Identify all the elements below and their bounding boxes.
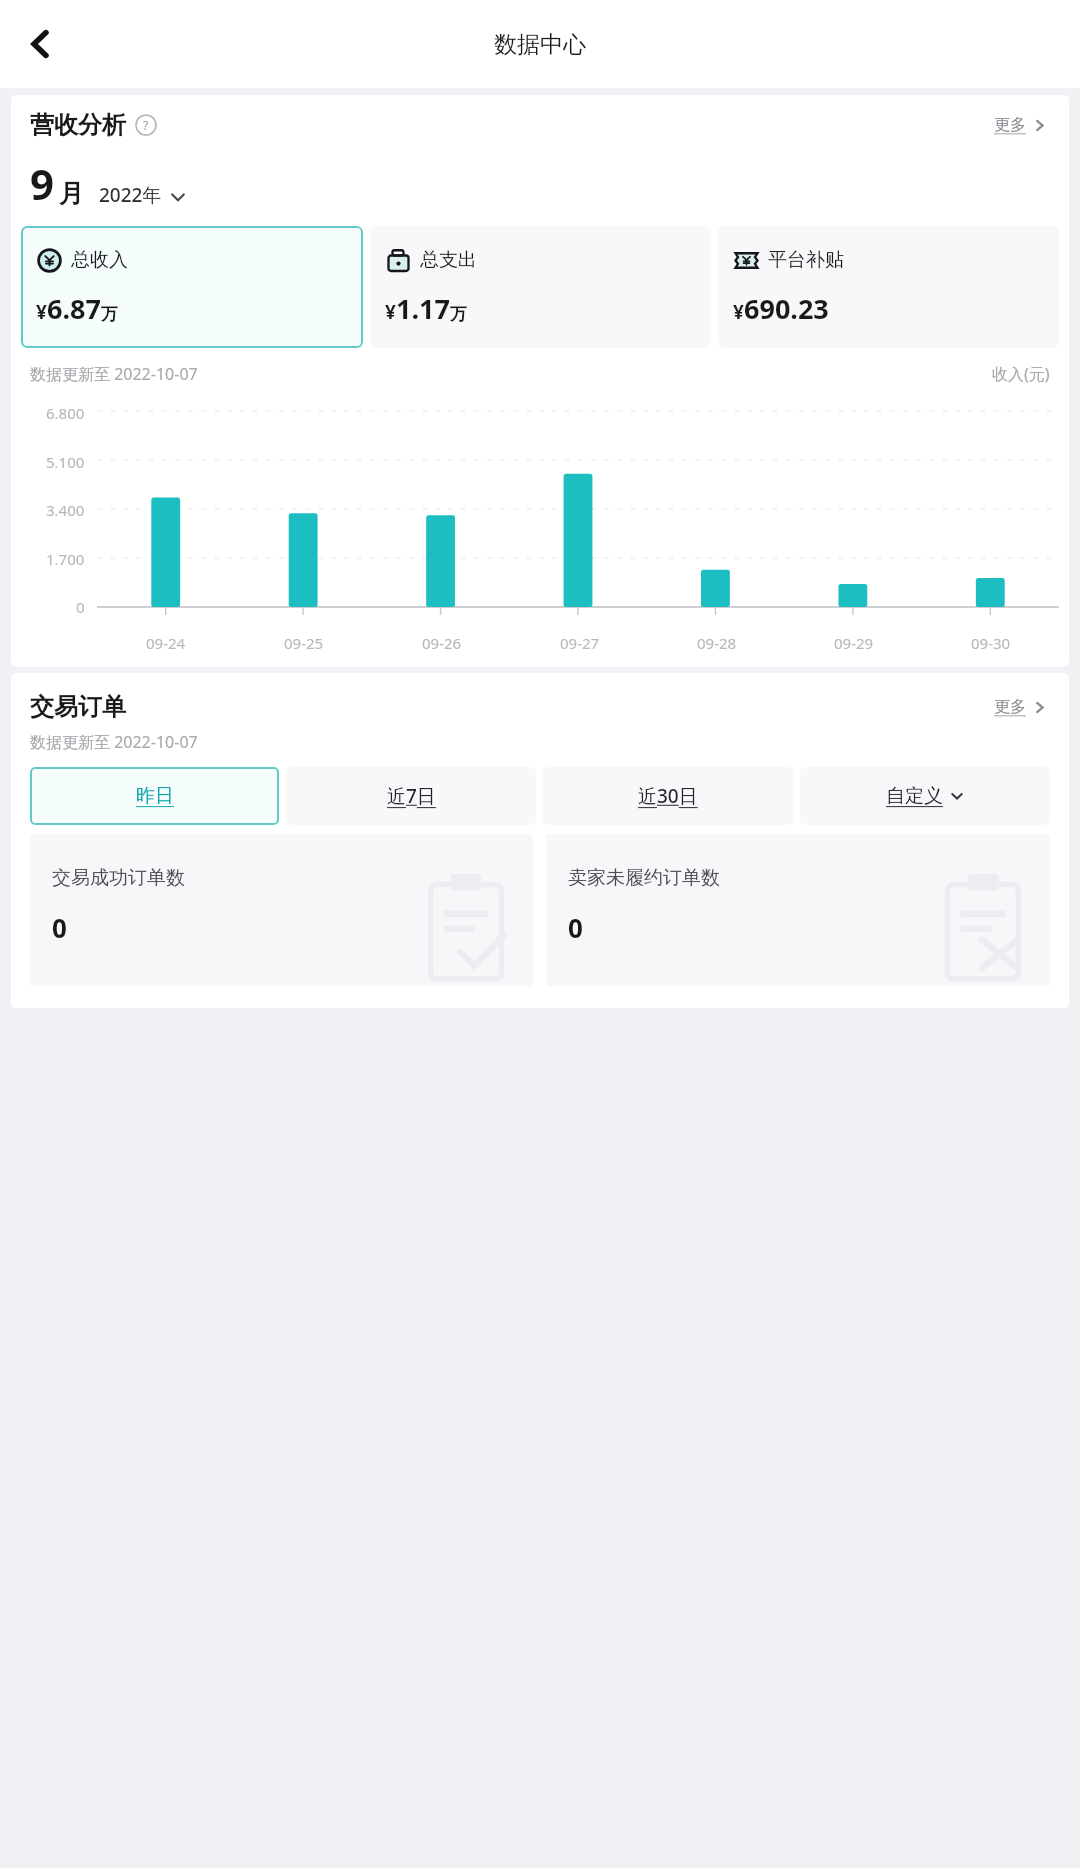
staticText: 总收入 bbox=[71, 248, 128, 272]
staticText: 09-29 bbox=[834, 633, 874, 653]
staticText: 卖家未履约订单数 bbox=[568, 866, 720, 890]
button[interactable]: 更多 bbox=[990, 691, 1050, 723]
button[interactable]: 总支出 bbox=[370, 226, 711, 348]
button[interactable]: 交易成功订单数 bbox=[30, 834, 533, 986]
button[interactable]: 卖家未履约订单数 bbox=[546, 834, 1050, 986]
button[interactable]: 近7日 bbox=[286, 767, 536, 825]
staticText: 万 bbox=[101, 304, 118, 325]
staticText: 1,700 bbox=[46, 549, 85, 565]
staticText: 昨日 bbox=[136, 784, 174, 808]
staticText: 6.87 bbox=[47, 290, 101, 327]
staticText: 近7日 bbox=[387, 783, 436, 809]
button[interactable]: Back bbox=[6, 10, 74, 78]
staticText: 5,100 bbox=[46, 452, 85, 468]
staticText: ? bbox=[143, 117, 149, 133]
button[interactable]: 昨日 bbox=[30, 767, 279, 825]
button[interactable]: 更多 bbox=[990, 109, 1050, 141]
staticText: 平台补贴 bbox=[768, 248, 844, 272]
staticText: 交易订单 bbox=[30, 692, 126, 722]
staticText: 近30日 bbox=[638, 783, 698, 809]
staticText: 9 bbox=[30, 155, 55, 212]
staticText: 总支出 bbox=[420, 248, 477, 272]
staticText: 更多 bbox=[994, 115, 1026, 135]
staticText: 2022年 bbox=[99, 182, 162, 208]
button[interactable]: 总收入 bbox=[21, 226, 363, 348]
staticText: ¥ bbox=[36, 299, 47, 325]
staticText: 09-24 bbox=[146, 633, 186, 653]
staticText: 09-28 bbox=[697, 633, 737, 653]
button[interactable]: 说明 bbox=[135, 114, 157, 136]
staticText: 更多 bbox=[994, 697, 1026, 717]
staticText: 营收分析 bbox=[30, 110, 126, 140]
staticText: 09-26 bbox=[422, 633, 462, 653]
staticText: 09-30 bbox=[971, 633, 1011, 653]
button[interactable]: 自定义 bbox=[800, 767, 1050, 825]
button[interactable]: 平台补贴 bbox=[718, 226, 1059, 348]
staticText: 0 bbox=[52, 910, 67, 945]
staticText: 0 bbox=[568, 910, 583, 945]
staticText: 交易成功订单数 bbox=[52, 866, 185, 890]
staticText: 09-25 bbox=[284, 633, 324, 653]
staticText: 数据更新至 2022-10-07 bbox=[30, 731, 198, 753]
staticText: 自定义 bbox=[886, 784, 943, 808]
staticText: 1.17 bbox=[396, 290, 450, 327]
button[interactable]: 9 bbox=[30, 155, 186, 212]
staticText: 690.23 bbox=[744, 290, 829, 327]
staticText: 09-27 bbox=[560, 633, 600, 653]
staticText: 月 bbox=[59, 178, 84, 209]
staticText: 3,400 bbox=[46, 500, 85, 516]
staticText: 万 bbox=[450, 304, 467, 325]
staticText: 6,800 bbox=[46, 403, 85, 419]
staticText: 数据更新至 2022-10-07 bbox=[30, 363, 198, 385]
staticText: ¥ bbox=[385, 299, 396, 325]
button[interactable]: 近30日 bbox=[543, 767, 793, 825]
staticText: 0 bbox=[76, 597, 85, 613]
staticText: ¥ bbox=[733, 299, 744, 325]
staticText: 数据中心 bbox=[494, 30, 586, 59]
staticText: 收入(元) bbox=[992, 363, 1050, 385]
